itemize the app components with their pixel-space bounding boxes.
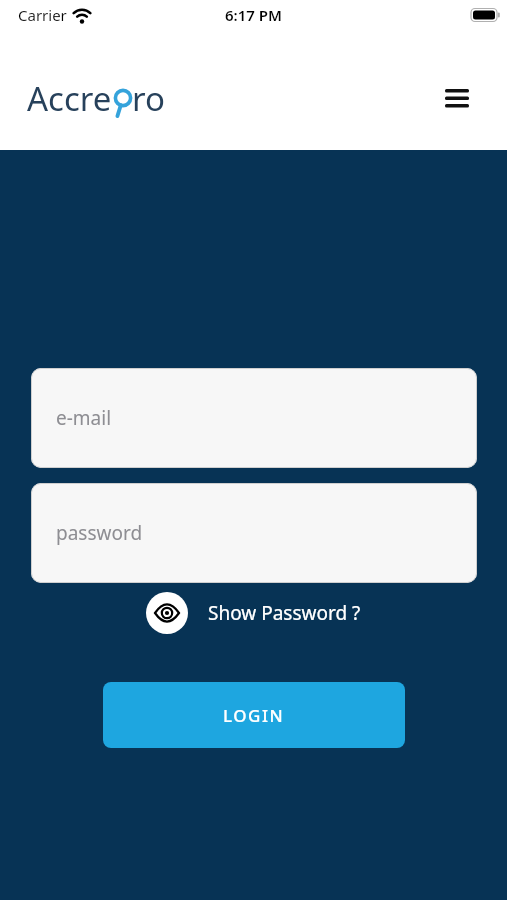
staticText: Carrier — [18, 5, 67, 25]
button[interactable]: LOGIN — [103, 682, 405, 748]
button[interactable]: password — [31, 483, 477, 583]
staticText: ro — [132, 76, 165, 121]
staticText: 6:17 PM — [225, 5, 282, 25]
staticText: LOGIN — [223, 704, 285, 727]
staticText: e-mail — [56, 405, 112, 431]
button[interactable]: e-mail — [31, 368, 477, 468]
staticText: password — [56, 520, 143, 546]
button[interactable]: Show Password ? — [0, 592, 507, 634]
staticText: Accre — [27, 76, 112, 121]
button[interactable] — [437, 78, 477, 118]
staticText: Show Password ? — [208, 600, 361, 626]
